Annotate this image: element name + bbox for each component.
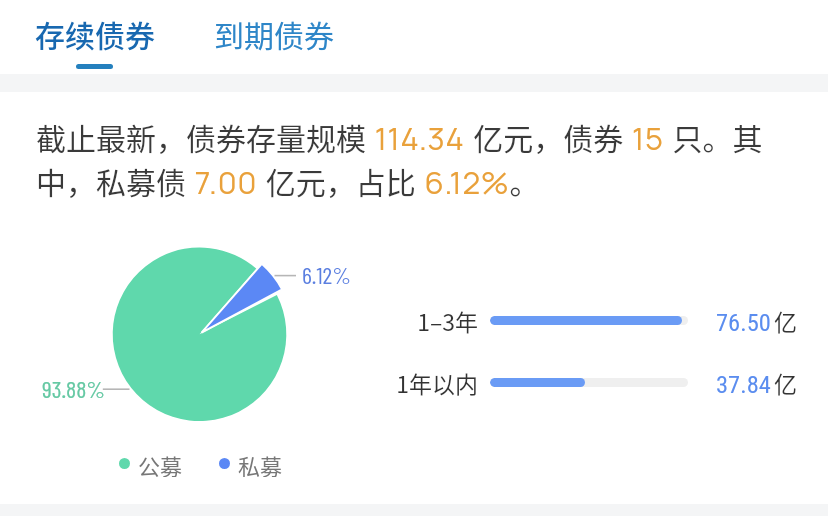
staticText: 存续债券 bbox=[35, 12, 155, 55]
staticText: 1–3年 bbox=[396, 304, 478, 337]
staticText: 93.88% bbox=[42, 374, 106, 403]
button[interactable]: 1–3年 bbox=[396, 298, 812, 342]
staticText: 亿 bbox=[774, 366, 797, 399]
button[interactable]: 存续债券 bbox=[15, 4, 175, 70]
staticText: 76.50 bbox=[716, 308, 771, 337]
button[interactable]: 1年以内 bbox=[396, 360, 812, 404]
staticText: 亿 bbox=[774, 304, 797, 337]
button[interactable]: 公募 bbox=[119, 449, 283, 477]
staticText: 6.12% bbox=[302, 260, 351, 289]
staticText: 私募 bbox=[238, 449, 283, 477]
button[interactable]: 到期债券 bbox=[194, 4, 354, 64]
staticText: 到期债券 bbox=[214, 12, 334, 55]
staticText: 1年以内 bbox=[396, 366, 478, 399]
staticText: 37.84 bbox=[716, 370, 771, 399]
staticText: 公募 bbox=[138, 449, 183, 477]
staticText: 截止最新，债券存量规模 114.34 亿元，债券 15 只。其 中，私募债 7.… bbox=[36, 115, 826, 203]
